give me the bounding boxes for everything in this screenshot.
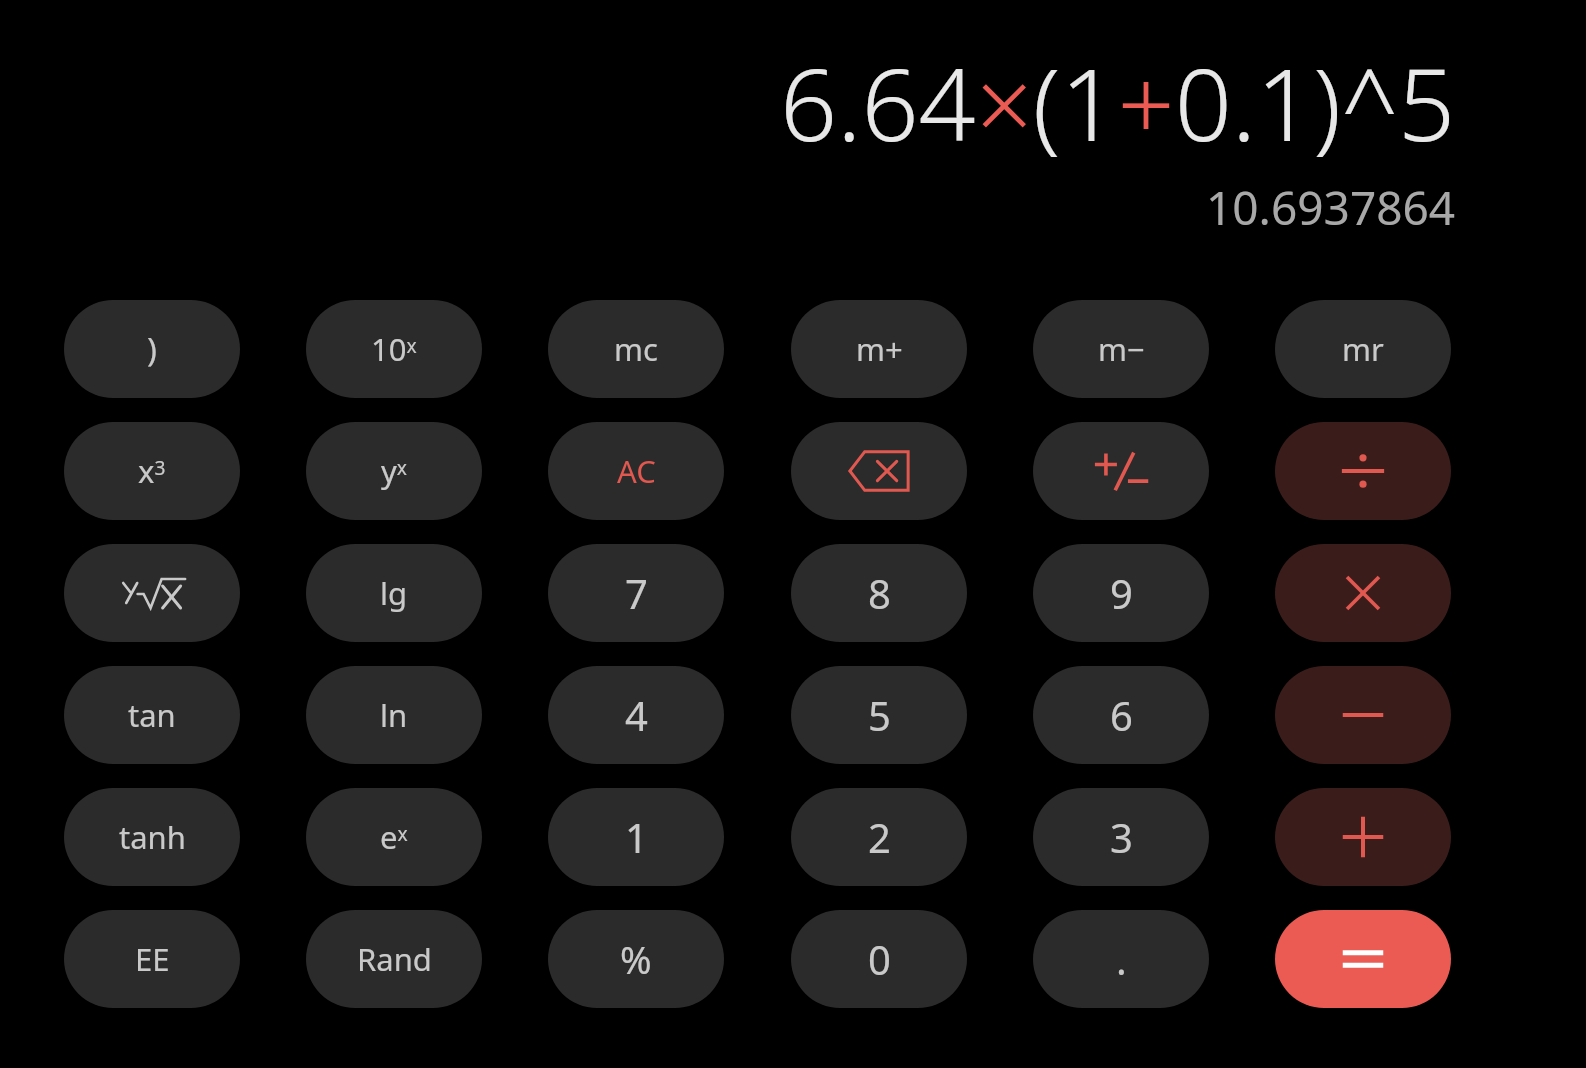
button[interactable]: AC — [548, 422, 724, 520]
staticText: 5 — [868, 688, 891, 742]
staticText: mr — [1342, 328, 1384, 370]
staticText: % — [620, 933, 652, 985]
staticText: ) — [147, 327, 157, 372]
button[interactable]: Rand — [306, 910, 482, 1008]
button[interactable]: 2 — [791, 788, 967, 886]
staticText: x3 — [138, 450, 166, 492]
button[interactable]: Equals — [1275, 910, 1451, 1008]
button[interactable]: Plus — [1275, 788, 1451, 886]
button[interactable]: ln — [306, 666, 482, 764]
staticText: ex — [380, 816, 408, 858]
button[interactable]: ) — [64, 300, 240, 398]
button[interactable]: . — [1033, 910, 1209, 1008]
button[interactable]: ex — [306, 788, 482, 886]
button[interactable]: lg — [306, 544, 482, 642]
staticText: 7 — [625, 566, 648, 620]
button[interactable]: Divide — [1275, 422, 1451, 520]
button[interactable]: 9 — [1033, 544, 1209, 642]
staticText: AC — [617, 450, 656, 492]
button[interactable]: mc — [548, 300, 724, 398]
button[interactable]: 8 — [791, 544, 967, 642]
staticText: m− — [1098, 328, 1145, 370]
staticText: 8 — [868, 566, 891, 620]
button[interactable]: 1 — [548, 788, 724, 886]
staticText: lg — [380, 572, 408, 614]
staticText: . — [1116, 932, 1127, 986]
staticText: mc — [614, 328, 658, 370]
staticText: tan — [128, 694, 176, 736]
button[interactable]: Backspace — [791, 422, 967, 520]
button[interactable]: EE — [64, 910, 240, 1008]
button[interactable]: mr — [1275, 300, 1451, 398]
staticText: ln — [380, 694, 408, 736]
button[interactable]: 7 — [548, 544, 724, 642]
staticText: 10x — [371, 328, 417, 370]
button[interactable]: m− — [1033, 300, 1209, 398]
staticText: EE — [135, 938, 170, 980]
button[interactable]: Multiply — [1275, 544, 1451, 642]
staticText: 9 — [1110, 566, 1133, 620]
button[interactable]: tan — [64, 666, 240, 764]
staticText: 0 — [868, 932, 891, 986]
button[interactable]: m+ — [791, 300, 967, 398]
button[interactable]: Plus minus — [1033, 422, 1209, 520]
button[interactable]: x3 — [64, 422, 240, 520]
staticText: 6 — [1110, 688, 1133, 742]
staticText: 3 — [1110, 810, 1133, 864]
staticText: m+ — [856, 328, 903, 370]
staticText: 4 — [625, 688, 648, 742]
button[interactable]: Minus — [1275, 666, 1451, 764]
button[interactable]: 6 — [1033, 666, 1209, 764]
button[interactable]: 0 — [791, 910, 967, 1008]
button[interactable]: 10x — [306, 300, 482, 398]
staticText: tanh — [119, 816, 186, 858]
staticText: 10.6937864 — [1206, 176, 1456, 239]
button[interactable]: 3 — [1033, 788, 1209, 886]
button[interactable]: tanh — [64, 788, 240, 886]
staticText: Rand — [357, 938, 432, 980]
staticText: 2 — [868, 810, 891, 864]
staticText: 6.64×(1+0.1)^5 — [780, 34, 1456, 170]
button[interactable]: yx — [306, 422, 482, 520]
button[interactable]: 5 — [791, 666, 967, 764]
button[interactable]: % — [548, 910, 724, 1008]
button[interactable]: Nth root — [64, 544, 240, 642]
staticText: yx — [381, 450, 407, 492]
staticText: 1 — [625, 810, 648, 864]
button[interactable]: 4 — [548, 666, 724, 764]
